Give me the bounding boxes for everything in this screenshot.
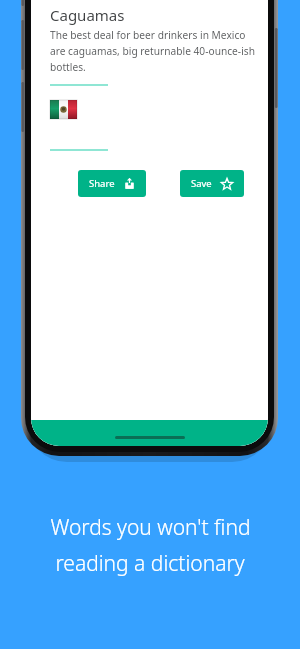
other: Save [221,178,233,190]
staticText: Caguamas [50,5,125,25]
button[interactable]: Save [180,170,244,197]
staticText: Share [89,177,115,190]
button[interactable]: Share [78,170,146,197]
staticText: The best deal for beer drinkers in Mexic… [50,28,256,74]
staticText: reading a dictionary [55,549,245,578]
staticText: Words you won't find [50,513,251,542]
other: Share [124,178,135,189]
staticText: Save [191,177,212,190]
